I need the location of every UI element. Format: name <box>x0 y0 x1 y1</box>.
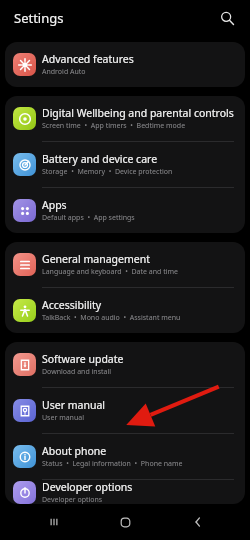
staticText: Apps <box>42 198 67 212</box>
staticText: Digital Wellbeing and parental controls <box>42 106 234 120</box>
button[interactable]: Digital Wellbeing and parental controls <box>5 96 245 141</box>
staticText: Screen time • App timers • Bedtime mode <box>42 121 186 131</box>
button[interactable]: Apps <box>5 188 245 233</box>
staticText: Storage • Memory • Device protection <box>42 167 173 177</box>
button[interactable]: Developer options <box>5 480 245 504</box>
button[interactable]: Software update <box>5 342 245 387</box>
staticText: Settings <box>14 9 64 27</box>
staticText: Advanced features <box>42 52 134 66</box>
staticText: Default apps • App settings <box>42 213 135 223</box>
button[interactable]: Advanced features <box>5 42 245 87</box>
button[interactable]: Battery and device care <box>5 142 245 187</box>
staticText: Android Auto <box>42 67 86 77</box>
staticText: TalkBack • Mono audio • Assistant menu <box>42 313 181 323</box>
staticText: General management <box>42 252 150 266</box>
staticText: Download and install <box>42 367 112 377</box>
button[interactable]: Back <box>184 508 212 536</box>
staticText: User manual <box>42 398 105 412</box>
button[interactable]: Home <box>111 508 139 536</box>
staticText: Developer options <box>42 495 103 504</box>
staticText: Status • Legal information • Phone name <box>42 459 183 469</box>
button[interactable]: User manual <box>5 388 245 433</box>
button[interactable]: Recent apps <box>40 508 68 536</box>
staticText: Accessibility <box>42 298 102 312</box>
button[interactable]: General management <box>5 242 245 287</box>
button[interactable]: Accessibility <box>5 288 245 333</box>
staticText: Language and keyboard • Date and time <box>42 267 179 277</box>
staticText: User manual <box>42 413 84 423</box>
staticText: Developer options <box>42 480 133 494</box>
button[interactable]: About phone <box>5 434 245 479</box>
staticText: Battery and device care <box>42 152 158 166</box>
staticText: About phone <box>42 444 107 458</box>
staticText: Software update <box>42 352 124 366</box>
button[interactable]: Search <box>214 5 240 31</box>
